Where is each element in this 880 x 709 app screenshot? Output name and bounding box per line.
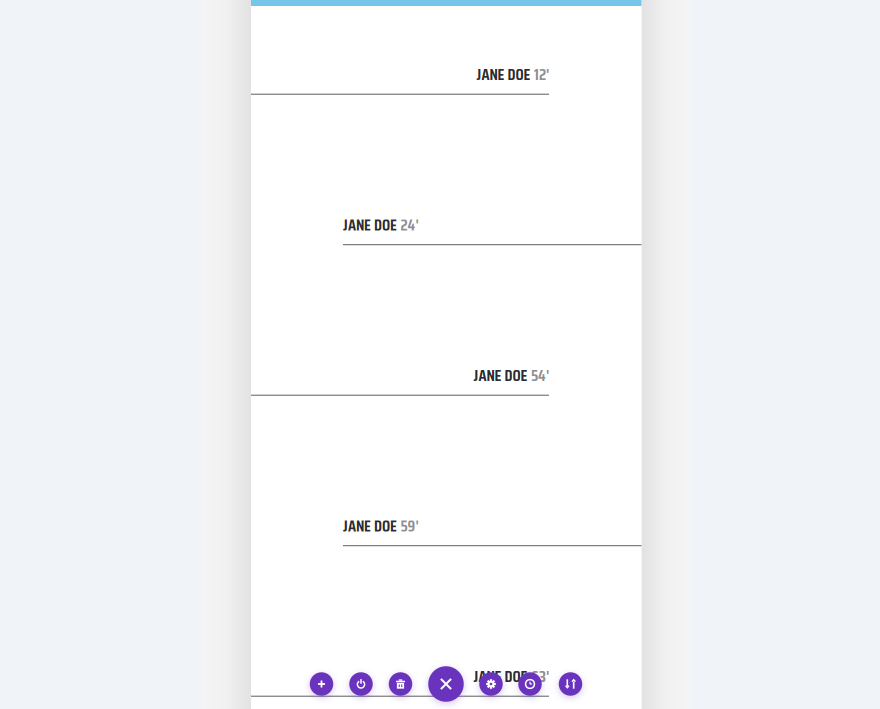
staticText: JANE DOE [473,363,527,388]
button[interactable]: Jane Doe, 63' [251,665,641,687]
button[interactable]: Jane Doe, 24' [251,214,641,236]
staticText: JANE DOE [343,513,397,539]
button[interactable]: Sort [559,672,582,696]
staticText: 59' [401,513,419,539]
staticText: JANE DOE [476,62,530,87]
staticText: 54' [531,363,549,388]
button[interactable]: Add [310,672,333,696]
button[interactable]: Jane Doe, 12' [251,63,641,85]
button[interactable]: Close [428,666,464,702]
button[interactable]: Jane Doe, 54' [251,364,641,386]
staticText: JANE DOE [473,664,527,689]
button[interactable]: Jane Doe, 59' [251,515,641,537]
staticText: JANE DOE [343,212,397,238]
staticText: 63' [531,664,549,689]
button[interactable]: Power [349,672,373,696]
button[interactable]: History [518,672,542,696]
button[interactable]: Delete [389,672,412,696]
button[interactable]: Settings [479,672,503,696]
staticText: 24' [401,212,419,238]
staticText: 12' [534,62,549,87]
